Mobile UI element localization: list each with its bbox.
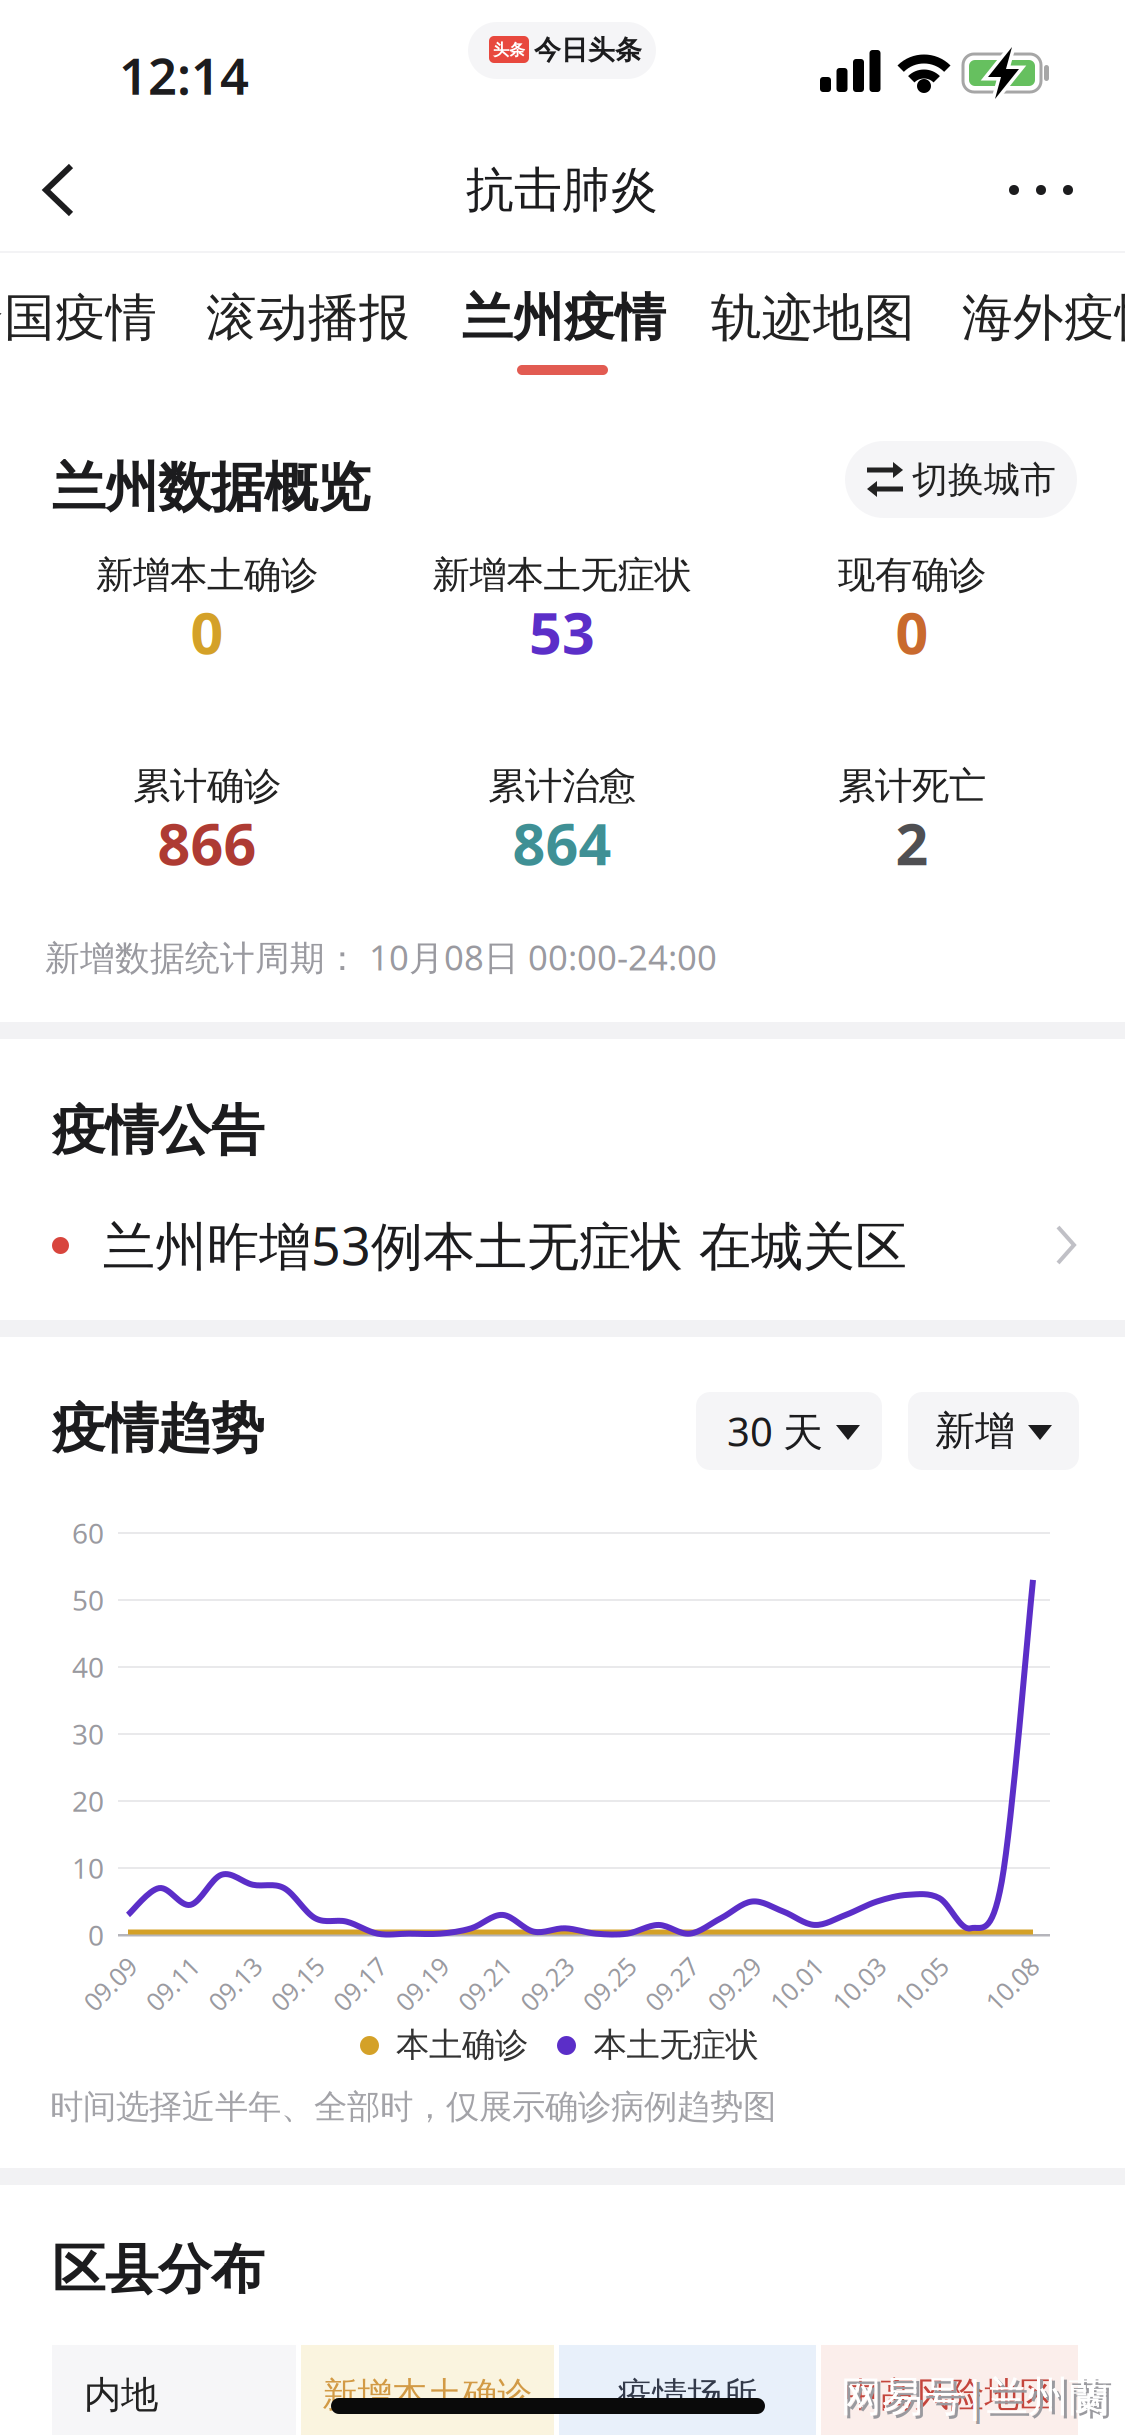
staticText: 53	[529, 594, 595, 670]
staticText: 09.13	[203, 1967, 266, 2001]
staticText: 头条	[493, 40, 525, 60]
staticText: 30 天	[727, 1404, 823, 1457]
button[interactable]: 返回	[45, 162, 85, 218]
staticText: 09.11	[141, 1967, 204, 2001]
staticText: 滚动播报	[206, 287, 410, 349]
staticText: 新增本土确诊	[322, 2374, 532, 2416]
button[interactable]: 更多	[996, 160, 1086, 220]
staticText: 09.21	[453, 1967, 516, 2001]
staticText: 09.19	[390, 1967, 453, 2001]
staticText: 兰州数据概览	[52, 455, 370, 520]
staticText: 本土确诊	[396, 2024, 528, 2065]
staticText: 09.23	[515, 1967, 578, 2001]
staticText: 09.29	[703, 1967, 766, 2001]
staticText: 新增本土无症状	[432, 552, 691, 598]
staticText: 10	[72, 1849, 104, 1887]
staticText: 864	[512, 805, 611, 881]
staticText: 全国疫情	[0, 287, 157, 349]
staticText: 网易号|兰州蘭	[843, 2371, 1112, 2425]
staticText: 累计治愈	[488, 763, 636, 809]
staticText: 0	[190, 594, 223, 670]
staticText: 轨迹地图	[711, 287, 915, 349]
staticText: 抗击肺炎	[466, 160, 658, 219]
button[interactable]: 轨迹地图	[711, 287, 915, 349]
staticText: 0	[895, 594, 928, 670]
staticText: 2	[895, 805, 928, 881]
button[interactable]: 内地	[52, 2345, 296, 2435]
button[interactable]: 30 天	[696, 1392, 882, 1470]
staticText: 疫情公告	[52, 1098, 264, 1163]
staticText: 09.25	[578, 1967, 641, 2001]
button[interactable]: 疫情场所	[559, 2345, 816, 2435]
staticText: 现有确诊	[838, 552, 986, 598]
button[interactable]: 兰州昨增53例本土无症状 在城关区	[0, 1190, 1125, 1300]
button[interactable]: 切换城市	[845, 441, 1077, 518]
staticText: 时间选择近半年、全部时，仅展示确诊病例趋势图	[50, 2086, 776, 2127]
staticText: 0	[88, 1916, 104, 1954]
staticText: 10.01	[765, 1967, 828, 2001]
staticText: 新增本土确诊	[96, 552, 318, 598]
staticText: 新增	[935, 1406, 1015, 1455]
staticText: 09.27	[640, 1967, 703, 2001]
button[interactable]: 全国疫情	[0, 287, 157, 349]
staticText: 40	[72, 1648, 104, 1686]
staticText: 网易号|兰州蘭	[840, 2368, 1109, 2422]
button[interactable]: 兰州疫情	[462, 287, 666, 349]
staticText: 累计确诊	[133, 763, 281, 809]
staticText: 内地	[84, 2372, 158, 2418]
staticText: 切换城市	[912, 458, 1056, 502]
staticText: 866	[157, 805, 256, 881]
staticText: 60	[72, 1514, 104, 1552]
staticText: 新增数据统计周期： 10月08日 00:00-24:00	[45, 934, 717, 980]
staticText: 09.15	[266, 1967, 329, 2001]
button[interactable]: 海外疫情	[962, 287, 1125, 349]
staticText: 区县分布	[52, 2237, 264, 2302]
staticText: 疫情场所	[617, 2374, 757, 2416]
staticText: 兰州疫情	[462, 287, 666, 349]
staticText: 09.17	[328, 1967, 391, 2001]
staticText: 10.05	[890, 1967, 953, 2001]
staticText: 09.09	[78, 1967, 141, 2001]
button[interactable]: 中高风险地区	[821, 2345, 1078, 2435]
staticText: 累计死亡	[838, 763, 986, 809]
staticText: 10.08	[980, 1967, 1043, 2001]
staticText: 30	[72, 1715, 104, 1753]
staticText: 海外疫情	[962, 287, 1125, 349]
button[interactable]: 滚动播报	[206, 287, 410, 349]
staticText: 10.03	[827, 1967, 890, 2001]
staticText: 兰州昨增53例本土无症状 在城关区	[103, 1210, 907, 1280]
staticText: 疫情趋势	[52, 1396, 264, 1461]
button[interactable]: 新增	[908, 1392, 1079, 1470]
staticText: 本土无症状	[593, 2024, 758, 2065]
staticText: 今日头条	[534, 34, 642, 66]
staticText: 12:14	[119, 41, 249, 109]
staticText: 中高风险地区	[844, 2374, 1054, 2416]
button[interactable]: 新增本土确诊	[301, 2345, 554, 2435]
staticText: 50	[72, 1581, 104, 1619]
button[interactable]: 今日头条	[468, 22, 656, 79]
staticText: 20	[72, 1782, 104, 1820]
